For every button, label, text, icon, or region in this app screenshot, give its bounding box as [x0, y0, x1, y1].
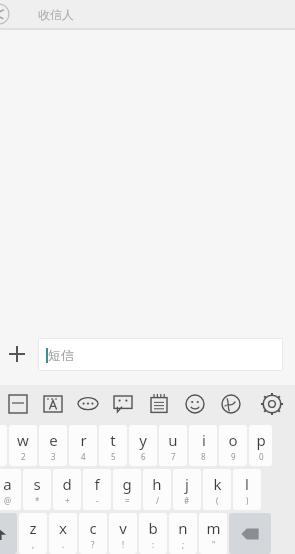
staticText: y	[139, 430, 147, 450]
button[interactable]: u	[159, 425, 187, 466]
staticText: ,	[32, 539, 35, 550]
button[interactable]: i	[189, 425, 217, 466]
staticText: b	[148, 518, 158, 538]
button[interactable]: x	[49, 513, 77, 554]
button[interactable]: k	[203, 469, 231, 510]
staticText: k	[213, 474, 222, 494]
button[interactable]: d	[53, 469, 81, 510]
button[interactable]: Notes	[141, 385, 177, 423]
staticText: 短信	[48, 347, 74, 363]
button[interactable]: h	[143, 469, 171, 510]
staticText: 收信人	[38, 7, 74, 22]
button[interactable]: b	[139, 513, 167, 554]
button[interactable]: r	[69, 425, 97, 466]
other: Back	[0, 3, 10, 25]
staticText: d	[62, 474, 72, 494]
button[interactable]: w	[9, 425, 37, 466]
button[interactable]: f	[83, 469, 111, 510]
staticText: p	[256, 430, 266, 450]
staticText: e	[49, 430, 58, 450]
staticText: r	[80, 430, 87, 450]
button[interactable]: Clipboard	[0, 385, 35, 423]
staticText: v	[119, 518, 127, 538]
staticText: .	[62, 539, 65, 550]
button[interactable]: Translate	[213, 385, 249, 423]
staticText: z	[29, 518, 37, 538]
button[interactable]: z	[19, 513, 47, 554]
button[interactable]: Emoji	[177, 385, 213, 423]
staticText: w	[17, 430, 29, 450]
staticText: f	[94, 474, 100, 494]
button[interactable]: Settings	[249, 385, 295, 423]
staticText: ?	[91, 539, 95, 550]
staticText: 9	[231, 451, 236, 462]
staticText: (	[216, 495, 219, 506]
staticText: /	[156, 495, 159, 506]
staticText: t	[110, 430, 116, 450]
staticText: s	[33, 474, 41, 494]
staticText: g	[122, 474, 132, 494]
button[interactable]: g	[113, 469, 141, 510]
staticText: 7	[171, 451, 176, 462]
button[interactable]: m	[199, 513, 227, 554]
staticText: ;	[182, 539, 185, 550]
button[interactable]: l	[233, 469, 261, 510]
staticText: 6	[141, 451, 146, 462]
staticText: #	[184, 495, 190, 506]
button[interactable]: j	[173, 469, 201, 510]
staticText: :	[152, 539, 155, 550]
staticText: a	[3, 474, 12, 494]
staticText: 8	[201, 451, 206, 462]
button[interactable]: Backspace	[229, 513, 271, 554]
staticText: m	[206, 518, 221, 538]
staticText: @	[4, 495, 12, 506]
button[interactable]: Sticker	[70, 385, 105, 423]
button[interactable]: Shift	[0, 513, 17, 554]
staticText: )	[246, 495, 249, 506]
staticText: 2	[21, 451, 26, 462]
staticText: =	[125, 495, 130, 506]
button[interactable]: v	[109, 513, 137, 554]
staticText: 0	[259, 451, 264, 462]
staticText: x	[59, 518, 67, 538]
staticText: 5	[111, 451, 116, 462]
button[interactable]: s	[23, 469, 51, 510]
button[interactable]: a	[0, 469, 21, 510]
button[interactable]: n	[169, 513, 197, 554]
staticText: i	[202, 430, 206, 450]
staticText: l	[245, 474, 249, 494]
button[interactable]: Emoticon	[105, 385, 141, 423]
staticText: j	[185, 474, 189, 494]
button[interactable]: Back	[0, 0, 295, 28]
staticText: +	[65, 495, 70, 506]
button[interactable]: c	[79, 513, 107, 554]
staticText: o	[228, 430, 238, 450]
button[interactable]: e	[39, 425, 67, 466]
staticText: 3	[51, 451, 56, 462]
button[interactable]: o	[219, 425, 247, 466]
staticText: 4	[81, 451, 86, 462]
button[interactable]: Add attachment	[0, 337, 34, 371]
staticText: u	[168, 430, 178, 450]
button[interactable]: Text style	[35, 385, 70, 423]
button[interactable]: t	[99, 425, 127, 466]
staticText: n	[178, 518, 188, 538]
button[interactable]: 短信	[38, 338, 283, 371]
staticText: "	[212, 539, 216, 550]
staticText: h	[152, 474, 162, 494]
button[interactable]: y	[129, 425, 157, 466]
staticText: !	[122, 539, 125, 550]
staticText: *	[35, 495, 40, 506]
staticText: -	[96, 495, 99, 506]
button[interactable]: p	[249, 425, 272, 466]
staticText: c	[89, 518, 97, 538]
